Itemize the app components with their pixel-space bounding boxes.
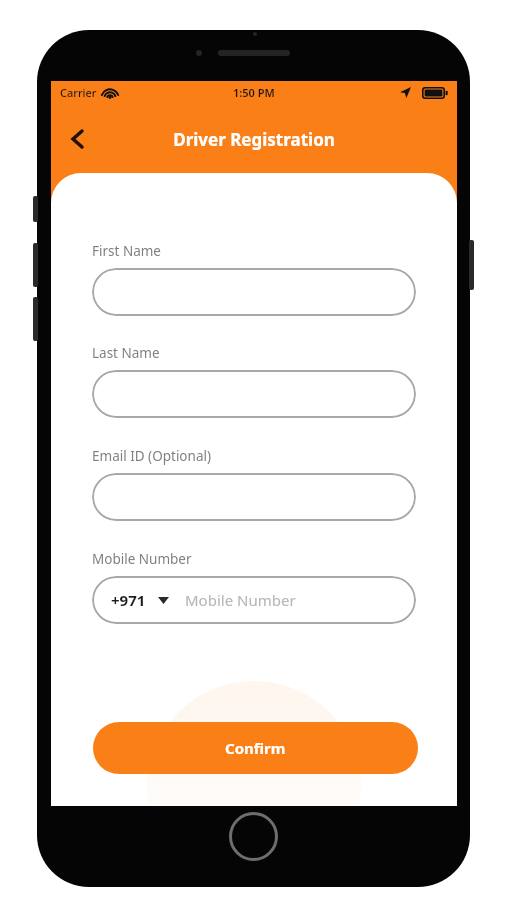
button[interactable]: +971 — [92, 576, 416, 624]
button[interactable] — [92, 370, 416, 418]
staticText: Mobile Number — [92, 550, 192, 568]
staticText: Driver Registration — [173, 128, 335, 151]
button[interactable] — [92, 473, 416, 521]
staticText: Carrier — [60, 85, 97, 100]
staticText: First Name — [92, 242, 161, 260]
staticText: Last Name — [92, 344, 160, 362]
button[interactable] — [92, 268, 416, 316]
staticText: +971 — [111, 590, 146, 610]
staticText: Email ID (Optional) — [92, 447, 211, 465]
staticText: Mobile Number — [185, 590, 296, 610]
button[interactable]: Confirm — [93, 722, 418, 774]
button[interactable]: Back — [59, 121, 95, 157]
staticText: 1:50 PM — [233, 85, 275, 100]
staticText: Confirm — [225, 738, 286, 758]
